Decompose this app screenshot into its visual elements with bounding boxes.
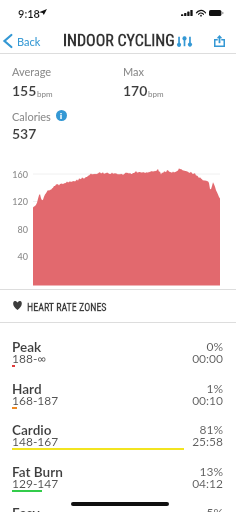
staticText: 160 <box>12 169 28 180</box>
staticText: INDOOR CYCLING <box>63 31 175 50</box>
staticText: Back <box>17 35 41 48</box>
button[interactable]: Hard <box>0 378 236 420</box>
staticText: 0% <box>0 339 223 353</box>
staticText: 04:12 <box>0 476 223 490</box>
staticText: Easy <box>12 505 40 512</box>
staticText: Fat Burn <box>12 464 63 480</box>
staticText: i <box>60 111 63 121</box>
staticText: bpm <box>148 89 164 99</box>
staticText: Max <box>123 65 144 78</box>
button[interactable]: Adjust <box>173 31 196 52</box>
staticText: Calories <box>12 110 51 123</box>
staticText: 120 <box>12 196 28 207</box>
button[interactable]: Peak <box>0 336 236 378</box>
staticText: 25:58 <box>0 434 223 448</box>
staticText: 80 <box>17 224 28 235</box>
staticText: Peak <box>12 339 42 355</box>
staticText: 188-∞ <box>12 351 47 365</box>
button[interactable]: Fat Burn <box>0 461 236 503</box>
button[interactable]: Cardio <box>0 419 236 461</box>
staticText: 00:10 <box>0 393 223 407</box>
button[interactable]: Share <box>209 31 229 51</box>
staticText: 13% <box>0 464 223 478</box>
staticText: 155 <box>12 82 37 99</box>
staticText: 129-147 <box>12 476 59 490</box>
button[interactable]: Easy <box>0 502 236 512</box>
button[interactable]: Info <box>56 110 67 121</box>
staticText: 00:00 <box>0 351 223 365</box>
staticText: Average <box>12 65 52 78</box>
staticText: 537 <box>12 125 37 142</box>
staticText: 168-187 <box>12 393 59 407</box>
staticText: 40 <box>17 251 28 262</box>
staticText: Hard <box>12 381 42 397</box>
staticText: bpm <box>37 89 53 99</box>
staticText: 148-167 <box>12 434 59 448</box>
staticText: HEART RATE ZONES <box>27 302 107 314</box>
staticText: 170 <box>123 82 148 99</box>
staticText: Cardio <box>12 422 52 438</box>
staticText: 81% <box>0 422 223 436</box>
staticText: 1% <box>0 381 223 395</box>
staticText: 9:18 <box>18 7 40 20</box>
staticText: 5% <box>0 505 223 512</box>
button[interactable]: Back <box>0 30 47 52</box>
